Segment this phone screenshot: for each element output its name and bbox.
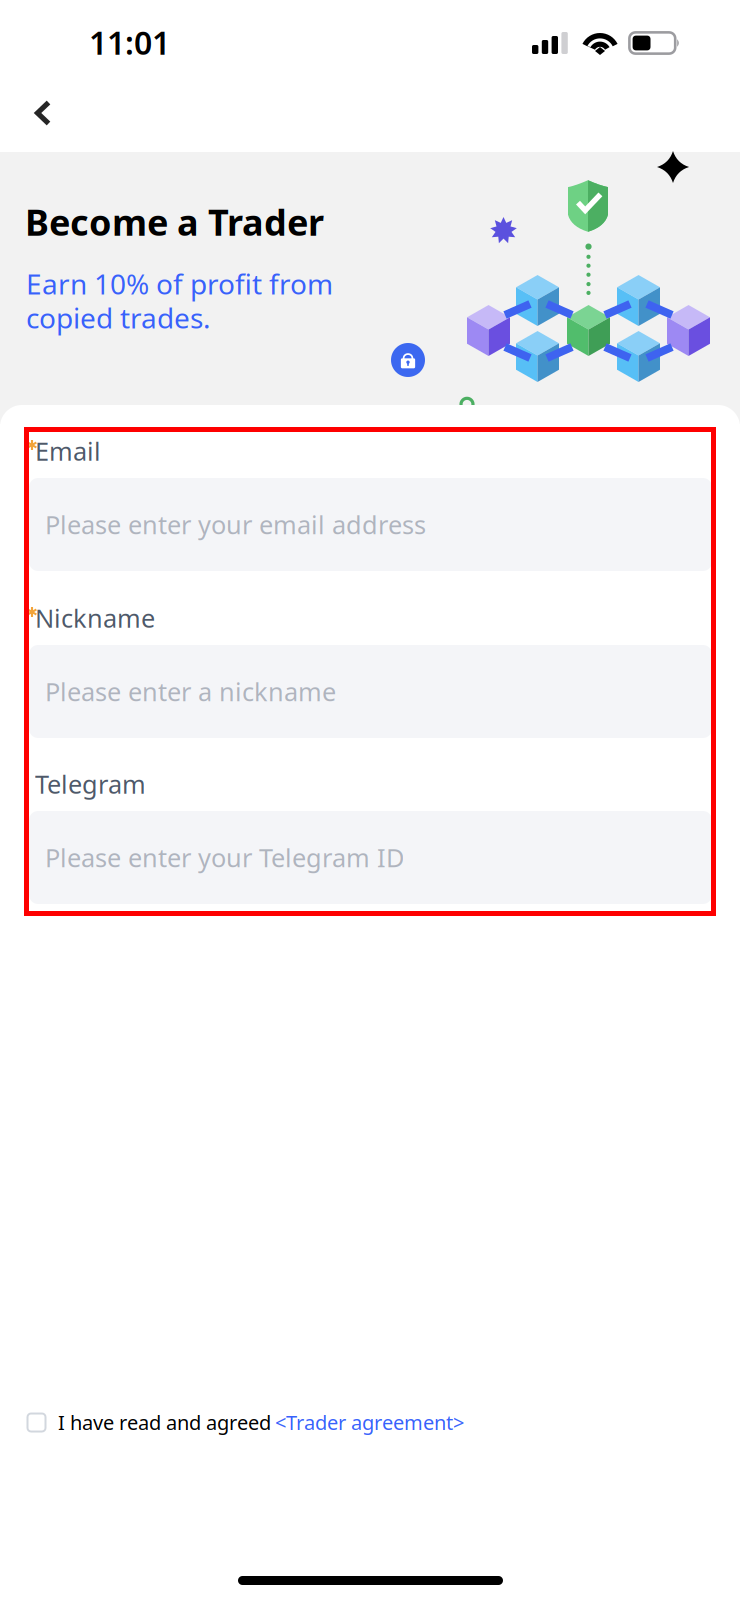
button[interactable]: I have read and agreed — [58, 1409, 271, 1436]
button[interactable]: Agree to the trader agreement — [20, 1406, 54, 1440]
button[interactable]: Please enter your Telegram ID — [29, 811, 712, 904]
staticText: I have read and agreed — [58, 1409, 271, 1436]
button[interactable]: Please enter a nickname — [29, 645, 712, 738]
button[interactable]: <Trader agreement> — [275, 1409, 464, 1436]
button[interactable]: Back — [10, 80, 76, 146]
staticText: <Trader agreement> — [275, 1409, 464, 1436]
staticText: Telegram — [35, 767, 146, 801]
staticText: copied trades. — [26, 299, 211, 336]
button[interactable]: Please enter your email address — [29, 478, 712, 571]
staticText: Nickname — [35, 601, 155, 635]
staticText: Please enter your Telegram ID — [45, 841, 404, 874]
staticText: Become a Trader — [25, 198, 324, 246]
staticText: Earn 10% of profit from — [26, 265, 333, 302]
staticText: Email — [35, 434, 101, 468]
staticText: 11:01 — [89, 21, 170, 63]
staticText: Please enter your email address — [45, 508, 426, 541]
staticText: Please enter a nickname — [45, 675, 336, 708]
